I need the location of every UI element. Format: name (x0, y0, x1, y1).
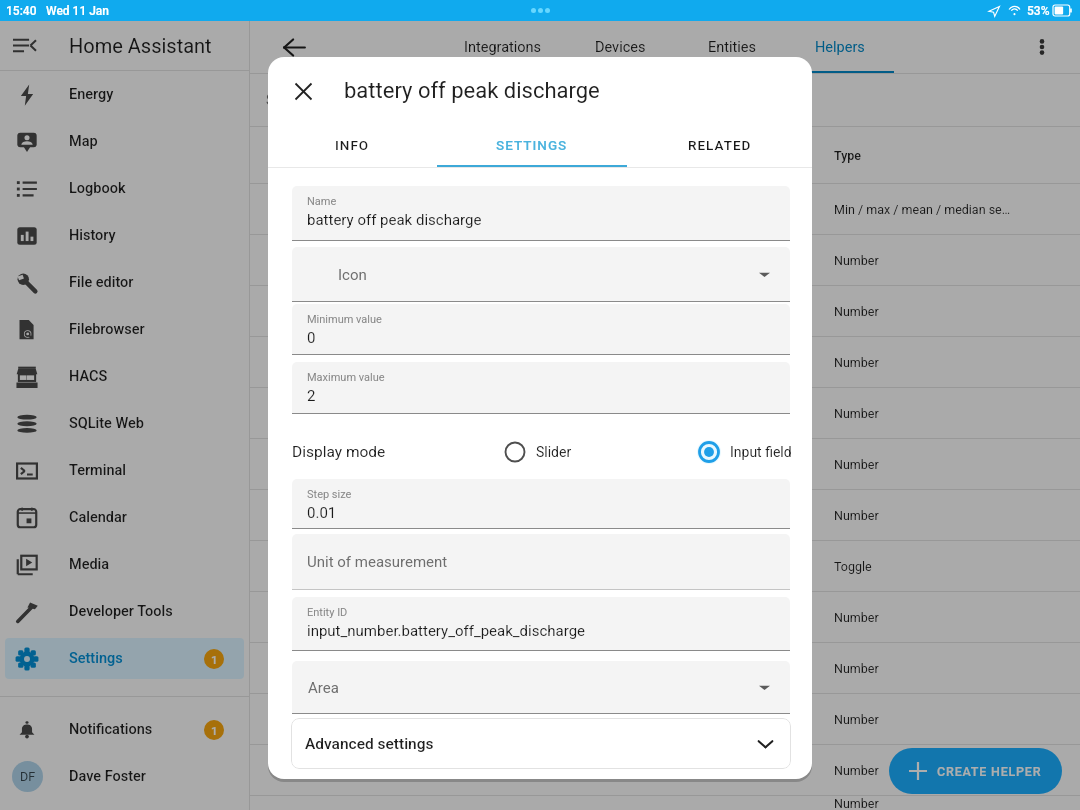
button[interactable]: Number (250, 337, 1080, 387)
staticText: File editor (69, 274, 134, 291)
button[interactable]: INFO (268, 121, 437, 168)
staticText: Entities (708, 39, 756, 56)
button[interactable]: Integrations (443, 21, 563, 73)
staticText: RELATED (688, 137, 752, 153)
staticText: 0 (307, 329, 316, 347)
button[interactable]: Min / max / mean / median se… (250, 184, 1080, 234)
staticText: Entity ID (307, 606, 348, 619)
button[interactable]: Number (250, 694, 1080, 744)
button[interactable]: Terminal (5, 450, 244, 491)
button[interactable]: Devices (563, 21, 678, 73)
staticText: 53% (1027, 4, 1050, 18)
staticText: Notifications (69, 721, 153, 738)
staticText: Maximum value (307, 371, 385, 384)
staticText: Number (834, 457, 879, 472)
button[interactable]: Map (5, 121, 244, 162)
button[interactable]: Name (292, 186, 790, 241)
button[interactable]: RELATED (627, 121, 812, 168)
button[interactable]: Number (250, 592, 1080, 642)
staticText: Helpers (815, 39, 865, 56)
button[interactable]: Entities (678, 21, 786, 73)
button[interactable]: Entity ID (292, 597, 790, 651)
staticText: 1 (211, 724, 218, 737)
staticText: Wed 11 Jan (46, 4, 109, 18)
staticText: Number (834, 712, 879, 727)
button[interactable]: Number (250, 235, 1080, 285)
button[interactable]: Back (268, 21, 320, 73)
staticText: Icon (338, 266, 367, 284)
button[interactable]: Filebrowser (5, 309, 244, 350)
staticText: Energy (69, 86, 114, 103)
staticText: SQLite Web (69, 415, 144, 432)
staticText: Home Assistant (69, 34, 212, 57)
button[interactable]: History (5, 215, 244, 256)
staticText: HACS (69, 368, 108, 385)
button[interactable]: Step size (292, 479, 790, 529)
button[interactable]: Close (283, 71, 323, 111)
button[interactable]: Number (250, 388, 1080, 438)
button[interactable]: SETTINGS (437, 121, 627, 168)
staticText: input_number.battery_off_peak_discharge (307, 622, 586, 640)
staticText: Input field (730, 444, 792, 460)
staticText: Advanced settings (305, 735, 434, 753)
staticText: Devices (595, 39, 646, 56)
staticText: CREATE HELPER (937, 764, 1042, 779)
staticText: Number (834, 508, 879, 523)
button[interactable]: File editor (5, 262, 244, 303)
button[interactable]: Number (250, 439, 1080, 489)
button[interactable]: Settings (5, 638, 244, 679)
staticText: Search (266, 92, 310, 108)
staticText: Number (834, 304, 879, 319)
button[interactable]: Advanced settings (291, 718, 791, 769)
staticText: Type (834, 148, 861, 163)
button[interactable]: DF (5, 756, 244, 797)
staticText: 1 (211, 653, 218, 666)
staticText: Number (834, 661, 879, 676)
staticText: Media (69, 556, 110, 573)
button[interactable]: Input field (697, 440, 792, 464)
staticText: Display mode (292, 443, 386, 461)
staticText: Min / max / mean / median se… (834, 202, 1011, 217)
button[interactable]: Maximum value (292, 362, 790, 414)
button[interactable]: Media (5, 544, 244, 585)
staticText: Number (834, 406, 879, 421)
staticText: Minimum value (307, 313, 382, 326)
button[interactable]: Developer Tools (5, 591, 244, 632)
button[interactable]: Logbook (5, 168, 244, 209)
button[interactable]: Number (250, 643, 1080, 693)
staticText: 2 (307, 387, 316, 405)
button[interactable]: Home Assistant (0, 21, 249, 70)
button[interactable]: Number (250, 286, 1080, 336)
button[interactable]: Helpers (786, 21, 894, 73)
button[interactable]: Unit of measurement (292, 534, 790, 590)
button[interactable]: Icon (292, 247, 790, 302)
staticText: Calendar (69, 509, 127, 526)
button[interactable]: Toggle (250, 541, 1080, 591)
staticText: Developer Tools (69, 603, 173, 620)
button[interactable]: Number (250, 745, 1080, 795)
staticText: Slider (536, 444, 572, 460)
button[interactable]: Calendar (5, 497, 244, 538)
button[interactable]: Notifications (5, 709, 244, 750)
staticText: Logbook (69, 180, 126, 197)
staticText: Number (834, 796, 879, 810)
button[interactable]: HACS (5, 356, 244, 397)
staticText: Integrations (464, 39, 542, 56)
button[interactable]: More options (1016, 21, 1068, 73)
button[interactable]: Energy (5, 74, 244, 115)
button[interactable]: Minimum value (292, 304, 790, 355)
button[interactable]: Number (250, 796, 1080, 810)
button[interactable]: SQLite Web (5, 403, 244, 444)
staticText: Area (308, 679, 339, 697)
staticText: Map (69, 133, 98, 150)
button[interactable]: Slider (503, 440, 572, 464)
staticText: Number (834, 355, 879, 370)
staticText: Number (834, 763, 879, 778)
staticText: Terminal (69, 462, 126, 479)
staticText: Unit of measurement (307, 553, 448, 571)
staticText: battery off peak discharge (307, 211, 482, 229)
button[interactable]: CREATE HELPER (889, 748, 1062, 794)
button[interactable]: Area (292, 661, 790, 714)
button[interactable]: Number (250, 490, 1080, 540)
staticText: Name (550, 148, 584, 163)
